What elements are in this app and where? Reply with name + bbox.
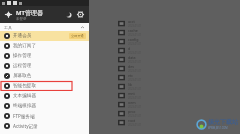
staticText: 操作管理 [13,53,32,59]
button[interactable]: etc [0,73,240,82]
button[interactable]: 操作管理 [0,51,89,61]
button[interactable]: 屏幕取色 [0,71,89,81]
button[interactable]: 文本编辑器 [0,91,89,101]
staticText: 未登录 [16,17,27,21]
button[interactable]: d [0,46,240,55]
button[interactable]: 运程管理 [0,61,89,71]
button[interactable]: 智能包提取 [0,81,89,91]
staticText: mnt [128,91,135,96]
button[interactable]: FTP服务端 [0,111,89,121]
button[interactable]: oem [0,100,240,109]
staticText: 极光下载站 [208,118,238,126]
staticText: oem [128,100,136,105]
button[interactable]: acct [0,19,240,28]
button[interactable]: 开通会员 [0,31,89,41]
staticText: lib [128,82,133,87]
button[interactable]: data [0,55,240,64]
staticText: data [128,55,136,60]
button[interactable]: cache [0,28,240,37]
staticText: MT管理器 [16,9,43,17]
staticText: 我的订阅了 [13,43,36,49]
button[interactable]: mnt [0,91,240,100]
button[interactable]: root [0,118,240,127]
button[interactable]: dev [0,64,240,73]
staticText: proc [128,109,136,114]
button[interactable]: Settings [76,10,85,19]
button[interactable]: Activity记录 [0,121,89,131]
staticText: 运程管理 [13,63,32,69]
staticText: acct [128,19,135,24]
staticText: d [128,46,131,51]
button[interactable]: proc [0,109,240,118]
button[interactable]: config [0,37,240,46]
staticText: config [128,37,139,42]
staticText: etc [128,73,134,78]
staticText: FTP服务端 [13,113,35,119]
staticText: 工具 [4,25,12,30]
button[interactable]: 终端模拟器 [0,101,89,111]
staticText: 立即开通 [71,34,84,38]
staticText: Activity记录 [13,123,38,129]
staticText: WWW.JB51.COM [208,126,228,130]
button[interactable]: Night mode [64,10,73,19]
staticText: 文本编辑器 [13,93,36,99]
staticText: 智能包提取 [13,83,36,89]
staticText: 开通会员 [13,33,32,39]
button[interactable]: lib [0,82,240,91]
staticText: 终端模拟器 [13,103,36,109]
staticText: cache [128,28,138,33]
button[interactable]: MT管理器 [0,6,89,23]
button[interactable]: 我的订阅了 [0,41,89,51]
staticText: root [128,118,136,123]
staticText: 屏幕取色 [13,73,32,79]
staticText: dev [128,64,134,69]
